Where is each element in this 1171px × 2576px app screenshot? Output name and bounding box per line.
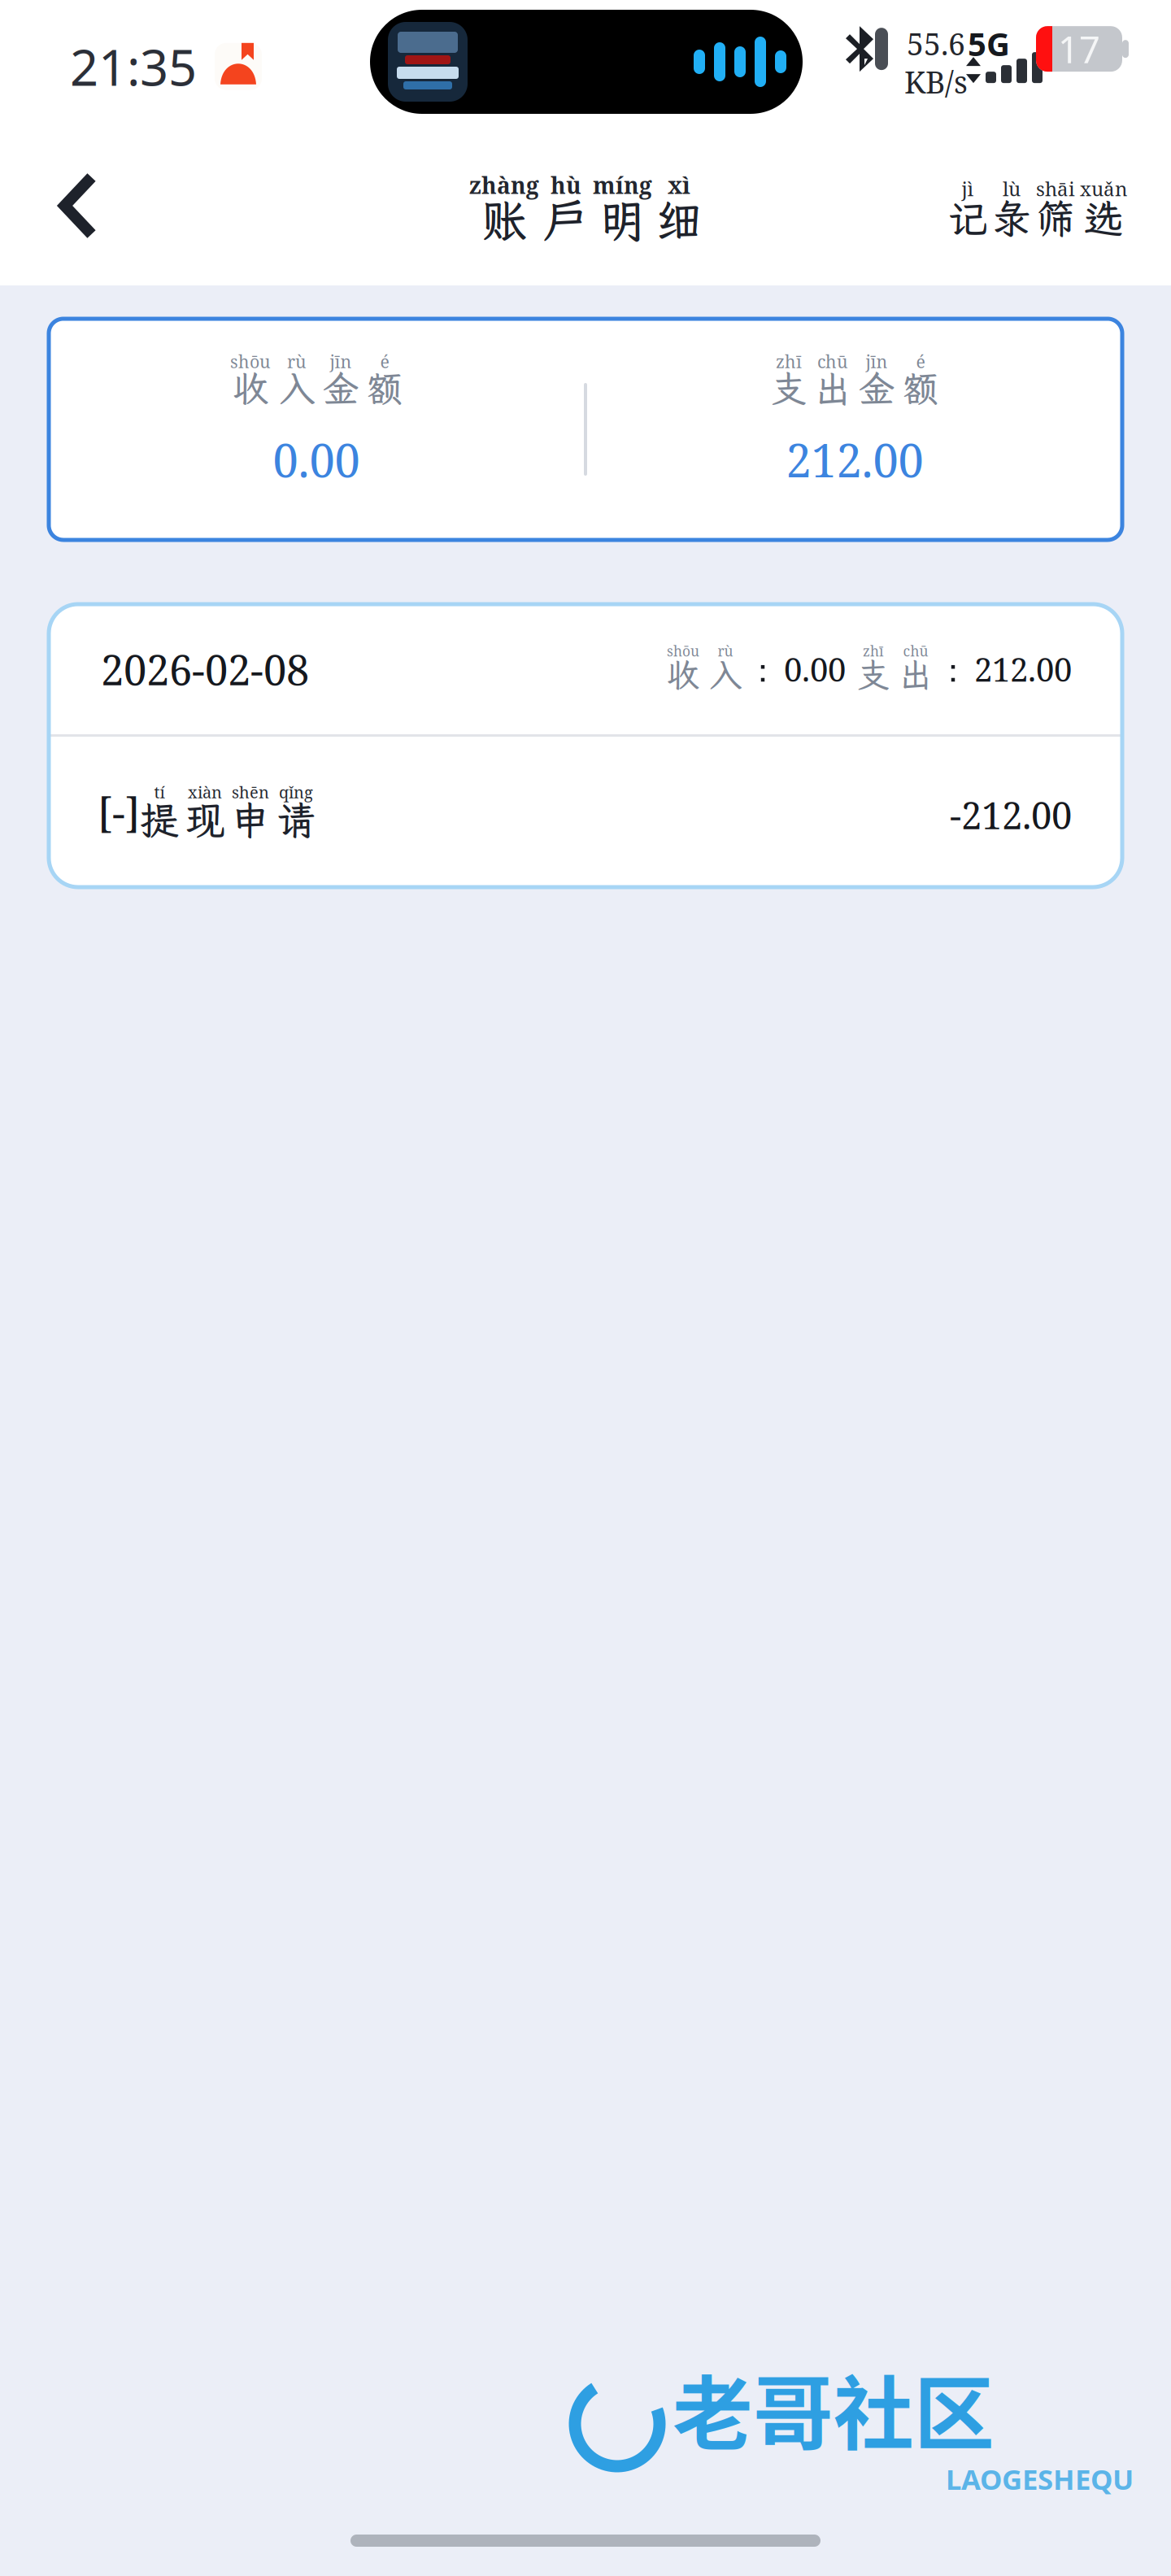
- staticText: tí: [154, 784, 165, 800]
- staticText: ：: [747, 650, 779, 691]
- staticText: zhī: [863, 644, 884, 658]
- staticText: lù: [1003, 179, 1021, 198]
- staticText: 请: [276, 800, 316, 840]
- button[interactable]: jì: [934, 161, 1142, 256]
- staticText: 17: [1058, 24, 1100, 74]
- staticText: jì: [962, 179, 974, 198]
- staticText: 老哥社区: [673, 2350, 995, 2466]
- staticText: 额: [903, 370, 938, 407]
- staticText: jīn: [866, 353, 888, 370]
- staticText: 收: [233, 370, 268, 407]
- staticText: hù: [551, 174, 581, 196]
- staticText: 筛: [1036, 198, 1075, 238]
- staticText: shāi: [1036, 179, 1075, 198]
- staticText: LAOGESHEQU: [946, 2460, 1134, 2498]
- staticText: 金: [323, 370, 359, 407]
- staticText: 212.00: [974, 647, 1072, 691]
- staticText: 21:35: [70, 33, 197, 100]
- staticText: shōu: [667, 644, 699, 658]
- staticText: 账: [481, 196, 527, 243]
- staticText: 入: [279, 370, 315, 407]
- staticText: ：: [937, 650, 969, 691]
- staticText: 现: [185, 800, 224, 840]
- staticText: 0.00: [784, 647, 846, 691]
- staticText: -212.00: [950, 790, 1072, 840]
- staticText: shōu: [230, 353, 271, 370]
- staticText: é: [916, 353, 925, 370]
- staticText: 55.6: [907, 23, 965, 64]
- staticText: míng: [593, 174, 652, 196]
- staticText: 额: [367, 370, 403, 407]
- staticText: 提: [140, 800, 179, 840]
- staticText: 出: [899, 658, 932, 691]
- staticText: 申: [231, 800, 270, 840]
- staticText: 212.00: [786, 429, 923, 491]
- staticText: é: [380, 353, 389, 370]
- staticText: zhàng: [469, 174, 539, 196]
- staticText: 细: [656, 196, 702, 243]
- staticText: 入: [709, 658, 742, 691]
- staticText: 出: [815, 370, 851, 407]
- staticText: 支: [771, 370, 807, 407]
- staticText: 记: [948, 198, 987, 238]
- button[interactable]: [-]: [49, 737, 1122, 887]
- staticText: 5G: [968, 21, 1010, 66]
- staticText: rù: [718, 644, 733, 658]
- staticText: zhī: [776, 353, 802, 370]
- staticText: chū: [817, 353, 848, 370]
- staticText: 支: [857, 658, 890, 691]
- staticText: 选: [1084, 198, 1123, 238]
- staticText: 录: [992, 198, 1031, 238]
- staticText: KB/s: [904, 61, 968, 102]
- staticText: xiàn: [188, 784, 222, 800]
- staticText: 明: [600, 196, 645, 243]
- staticText: xì: [668, 174, 690, 196]
- staticText: shēn: [232, 784, 269, 800]
- button[interactable]: Back: [15, 145, 141, 267]
- staticText: jīn: [330, 353, 352, 370]
- staticText: chū: [903, 644, 928, 658]
- staticText: 户: [543, 196, 589, 243]
- staticText: 0.00: [273, 429, 360, 491]
- staticText: qǐng: [279, 784, 313, 800]
- staticText: 金: [859, 370, 895, 407]
- staticText: xuǎn: [1080, 179, 1127, 198]
- staticText: [-]: [98, 784, 140, 840]
- staticText: 收: [667, 658, 699, 691]
- staticText: 2026-02-08: [101, 641, 309, 697]
- staticText: rù: [287, 353, 307, 370]
